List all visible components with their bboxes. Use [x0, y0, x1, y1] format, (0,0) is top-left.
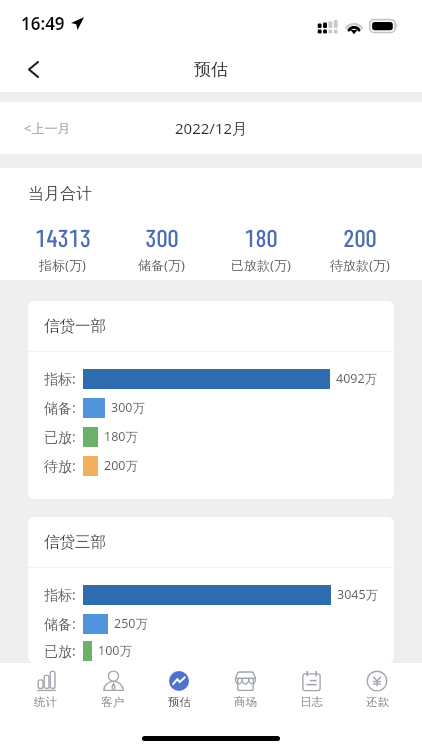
- staticText: 指标:: [44, 585, 76, 604]
- staticText: 指标(万): [39, 256, 86, 274]
- staticText: 商场: [234, 695, 257, 709]
- staticText: 预估: [168, 695, 191, 709]
- button[interactable]: 还款: [344, 663, 410, 716]
- button[interactable]: Back: [14, 50, 52, 88]
- staticText: 日志: [300, 695, 323, 709]
- staticText: 信贷一部: [44, 316, 106, 336]
- button[interactable]: 统计: [12, 663, 79, 716]
- staticText: 3045万: [337, 586, 379, 603]
- staticText: <上一月: [24, 119, 71, 137]
- staticText: 待放:: [44, 456, 76, 475]
- staticText: 180万: [104, 428, 138, 445]
- staticText: 200: [343, 222, 377, 251]
- button[interactable]: 商场: [212, 663, 278, 716]
- button[interactable]: 日志: [278, 663, 344, 716]
- staticText: 储备(万): [138, 256, 185, 274]
- staticText: 当月合计: [28, 184, 92, 204]
- staticText: 2022/12月: [175, 118, 248, 138]
- staticText: 已放款(万): [231, 256, 291, 274]
- staticText: 储备:: [44, 614, 76, 633]
- staticText: 16:49: [21, 12, 65, 35]
- staticText: 已放:: [44, 641, 76, 660]
- staticText: 已放:: [44, 427, 76, 446]
- staticText: 200万: [104, 457, 138, 474]
- staticText: 信贷三部: [44, 532, 106, 552]
- staticText: 统计: [34, 695, 57, 709]
- staticText: 4092万: [336, 370, 378, 387]
- staticText: 100万: [98, 642, 132, 659]
- staticText: 还款: [366, 695, 389, 709]
- staticText: 指标:: [44, 369, 76, 388]
- staticText: 300: [145, 222, 179, 251]
- staticText: 待放款(万): [330, 256, 390, 274]
- staticText: 250万: [114, 615, 148, 632]
- staticText: 储备:: [44, 398, 76, 417]
- staticText: 300万: [111, 399, 145, 416]
- button[interactable]: 客户: [79, 663, 146, 716]
- button[interactable]: 14313: [13, 222, 112, 274]
- button[interactable]: 180: [211, 222, 310, 274]
- staticText: 预估: [194, 59, 228, 80]
- button[interactable]: 300: [112, 222, 211, 274]
- button[interactable]: 预估: [146, 663, 212, 716]
- staticText: 14313: [35, 222, 91, 251]
- button[interactable]: 200: [310, 222, 409, 274]
- button[interactable]: <上一月: [24, 119, 71, 137]
- staticText: 180: [244, 222, 278, 251]
- staticText: 客户: [101, 695, 124, 709]
